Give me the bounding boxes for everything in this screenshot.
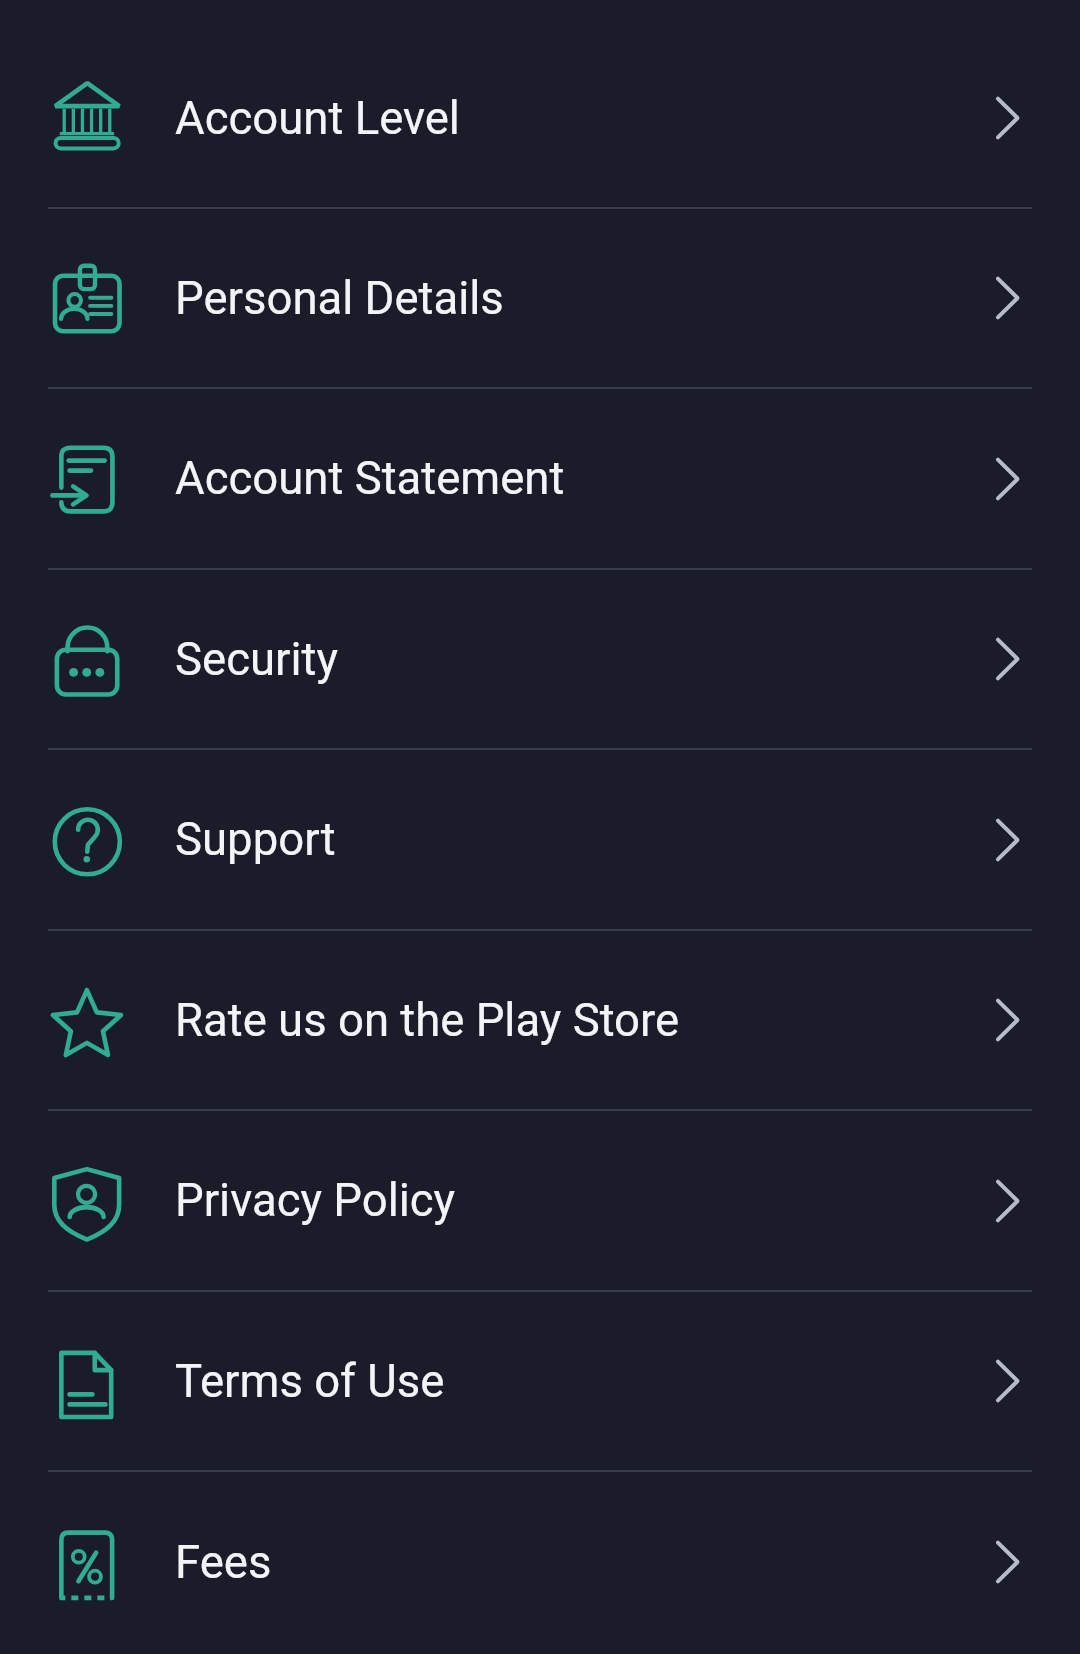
staticText: Personal Details bbox=[175, 272, 504, 325]
other: Open Privacy Policy bbox=[983, 1177, 1031, 1225]
staticText: Support bbox=[175, 813, 336, 866]
button[interactable]: Personal Details bbox=[0, 209, 1080, 387]
staticText: Fees bbox=[175, 1536, 272, 1589]
button[interactable]: Account Level bbox=[0, 29, 1080, 207]
other: Open Account Level bbox=[983, 94, 1031, 142]
staticText: Account Statement bbox=[175, 452, 565, 505]
other: Open Security bbox=[983, 635, 1031, 683]
staticText: Terms of Use bbox=[175, 1355, 445, 1408]
button[interactable]: Security bbox=[0, 570, 1080, 748]
staticText: Privacy Policy bbox=[175, 1174, 456, 1227]
staticText: Account Level bbox=[175, 92, 460, 145]
button[interactable]: Privacy Policy bbox=[0, 1111, 1080, 1290]
button[interactable]: Support bbox=[0, 750, 1080, 929]
button[interactable]: Rate us on the Play Store bbox=[0, 931, 1080, 1109]
other: Open Support bbox=[983, 816, 1031, 864]
other: Open Account Statement bbox=[983, 455, 1031, 503]
button[interactable]: Terms of Use bbox=[0, 1292, 1080, 1470]
button[interactable]: Fees bbox=[0, 1472, 1080, 1652]
other: Open Rate us on the Play Store bbox=[983, 996, 1031, 1044]
other: Open Fees bbox=[983, 1538, 1031, 1586]
button[interactable]: Account Statement bbox=[0, 389, 1080, 568]
other: Open Personal Details bbox=[983, 274, 1031, 322]
staticText: Security bbox=[175, 633, 338, 686]
staticText: Rate us on the Play Store bbox=[175, 994, 680, 1047]
other: Open Terms of Use bbox=[983, 1357, 1031, 1405]
